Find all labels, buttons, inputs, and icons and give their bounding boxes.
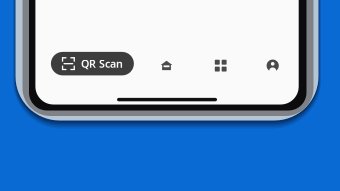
button[interactable]: Account: [258, 52, 288, 75]
button[interactable]: Categories: [206, 52, 236, 75]
button[interactable]: QR Scan: [51, 52, 134, 75]
staticText: QR Scan: [81, 57, 123, 71]
button[interactable]: Home: [151, 52, 181, 75]
